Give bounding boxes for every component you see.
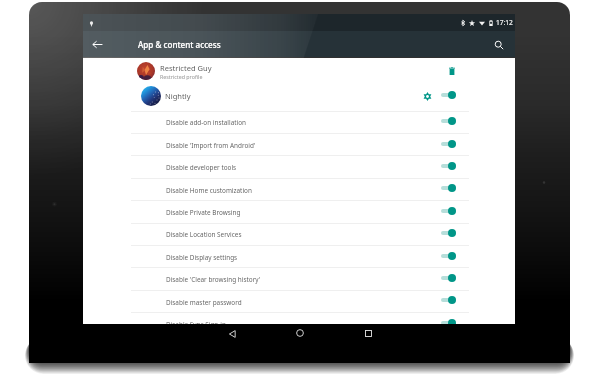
button[interactable]: Search bbox=[488, 34, 509, 55]
button[interactable]: Toggle bbox=[442, 227, 462, 239]
button[interactable]: Toggle bbox=[442, 89, 462, 101]
button[interactable]: Disable Private Browsing bbox=[83, 201, 515, 223]
button[interactable]: Toggle bbox=[442, 182, 462, 194]
button[interactable]: Toggle bbox=[442, 115, 462, 127]
button[interactable]: Disable Display settings bbox=[83, 246, 515, 268]
button[interactable]: Toggle bbox=[442, 272, 462, 284]
button[interactable]: App settings bbox=[420, 89, 434, 103]
button[interactable]: Toggle bbox=[442, 317, 462, 329]
staticText: Disable Private Browsing bbox=[166, 208, 241, 217]
staticText: Disable 'Import from Android' bbox=[166, 141, 256, 150]
button[interactable]: Nightly bbox=[83, 84, 515, 108]
button[interactable]: Toggle bbox=[442, 160, 462, 172]
staticText: Disable Location Services bbox=[166, 230, 242, 239]
staticText: Disable add-on installation bbox=[166, 118, 246, 127]
staticText: App & content access bbox=[138, 39, 221, 50]
staticText: Disable developer tools bbox=[166, 163, 237, 172]
staticText: Restricted profile bbox=[160, 73, 203, 80]
button[interactable]: Delete restricted profile bbox=[444, 63, 460, 79]
button[interactable]: Disable add-on installation bbox=[83, 111, 515, 133]
staticText: Disable 'Clear browsing history' bbox=[166, 275, 261, 284]
button[interactable]: Disable developer tools bbox=[83, 156, 515, 178]
staticText: Restricted Guy bbox=[160, 63, 212, 73]
button[interactable]: Disable 'Import from Android' bbox=[83, 134, 515, 156]
button[interactable]: Restricted Guy bbox=[83, 58, 515, 84]
staticText: Disable Sync Sign-in bbox=[166, 320, 226, 329]
staticText: Disable master password bbox=[166, 298, 242, 307]
button[interactable]: Disable Location Services bbox=[83, 223, 515, 245]
button[interactable]: Recent apps bbox=[361, 326, 375, 340]
staticText: Nightly bbox=[165, 91, 191, 101]
button[interactable]: Navigate up bbox=[87, 34, 108, 55]
button[interactable]: Home bbox=[293, 326, 307, 340]
button[interactable]: Back bbox=[225, 327, 239, 341]
button[interactable]: Toggle bbox=[442, 138, 462, 150]
button[interactable]: Disable Home customization bbox=[83, 179, 515, 201]
button[interactable]: Disable 'Clear browsing history' bbox=[83, 268, 515, 290]
staticText: Disable Display settings bbox=[166, 253, 238, 262]
button[interactable]: Disable master password bbox=[83, 291, 515, 313]
button[interactable]: Toggle bbox=[442, 205, 462, 217]
button[interactable]: Disable Sync Sign-in bbox=[83, 313, 515, 335]
button[interactable]: Toggle bbox=[442, 250, 462, 262]
staticText: 17:12 bbox=[496, 18, 513, 27]
staticText: Disable Home customization bbox=[166, 186, 252, 195]
button[interactable]: Toggle bbox=[442, 294, 462, 306]
